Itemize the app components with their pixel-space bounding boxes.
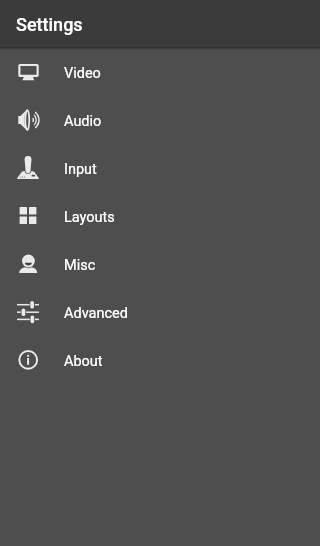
staticText: Layouts	[64, 209, 115, 226]
staticText: Video	[64, 65, 101, 82]
staticText: About	[64, 353, 103, 370]
button[interactable]: Layouts	[0, 192, 320, 240]
button[interactable]: Audio	[0, 96, 320, 144]
staticText: Audio	[64, 113, 102, 130]
button[interactable]: Video	[0, 48, 320, 96]
button[interactable]: Input	[0, 144, 320, 192]
button[interactable]: Advanced	[0, 288, 320, 336]
button[interactable]: About	[0, 336, 320, 384]
button[interactable]: Misc	[0, 240, 320, 288]
staticText: Settings	[16, 14, 83, 35]
staticText: Advanced	[64, 305, 128, 322]
staticText: Misc	[64, 257, 96, 274]
staticText: Input	[64, 161, 97, 178]
